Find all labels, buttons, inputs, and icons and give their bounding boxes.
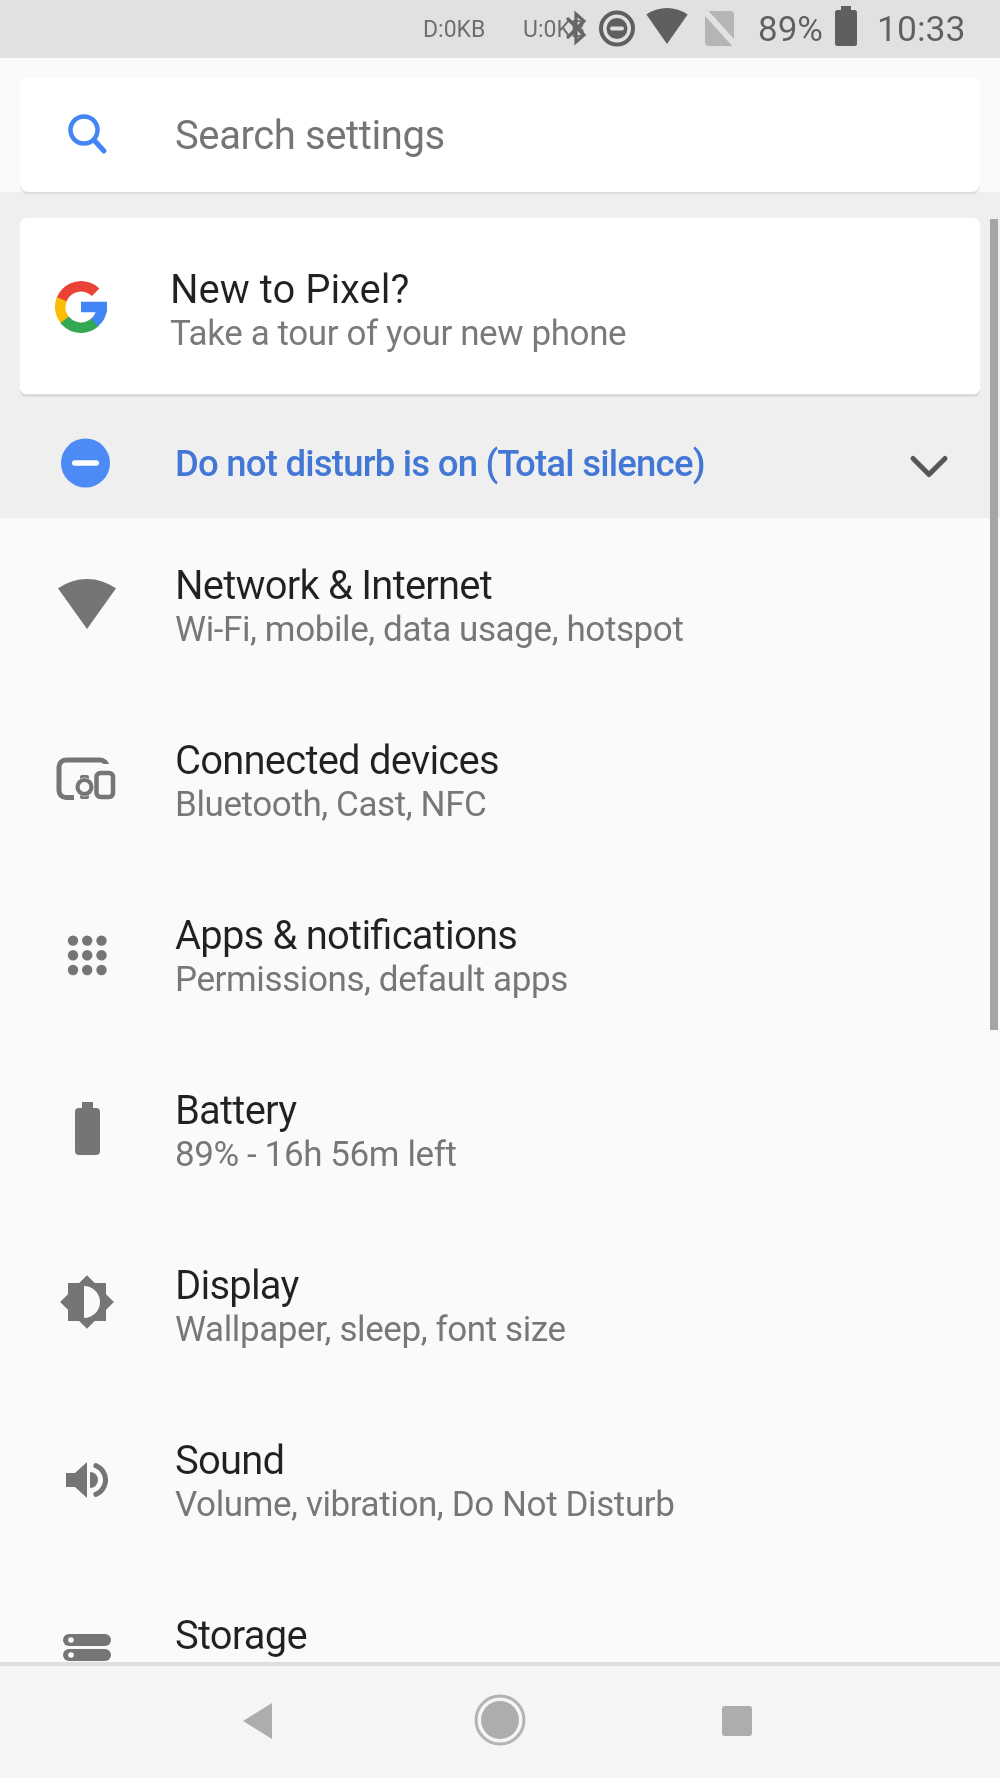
button[interactable] <box>467 1687 533 1753</box>
button[interactable]: New to Pixel? <box>20 218 980 394</box>
staticText: D:0KB <box>423 16 486 43</box>
staticText: Do not disturb is on (Total silence) <box>175 442 705 485</box>
staticText: Permissions, default apps <box>175 959 568 1000</box>
staticText: Search settings <box>175 112 445 159</box>
button[interactable]: Search settings <box>20 78 980 192</box>
staticText: Display <box>175 1262 299 1309</box>
staticText: Wallpaper, sleep, font size <box>175 1309 566 1350</box>
staticText: Connected devices <box>175 737 499 784</box>
button[interactable]: Connected devices <box>0 693 1000 868</box>
button[interactable]: Do not disturb is on (Total silence) <box>0 394 1000 518</box>
staticText: 10:33 <box>877 8 966 50</box>
button[interactable]: Battery <box>0 1043 1000 1218</box>
button[interactable]: Display <box>0 1218 1000 1393</box>
staticText: Take a tour of your new phone <box>170 313 627 354</box>
staticText: New to Pixel? <box>170 266 410 313</box>
staticText: 52% used - 15.28 GB free <box>175 1659 554 1700</box>
staticText: 89% <box>758 9 823 50</box>
button[interactable] <box>228 1688 294 1754</box>
button[interactable]: Sound <box>0 1393 1000 1568</box>
button[interactable]: Storage <box>0 1568 1000 1743</box>
staticText: Network & Internet <box>175 562 493 609</box>
staticText: Battery <box>175 1087 297 1134</box>
button[interactable] <box>704 1688 770 1754</box>
staticText: Bluetooth, Cast, NFC <box>175 784 487 825</box>
button[interactable]: Apps & notifications <box>0 868 1000 1043</box>
staticText: U:0KB <box>523 16 586 43</box>
staticText: Storage <box>175 1612 307 1659</box>
staticText: Volume, vibration, Do Not Disturb <box>175 1484 675 1525</box>
staticText: 89% - 16h 56m left <box>175 1134 457 1175</box>
staticText: Apps & notifications <box>175 912 518 959</box>
staticText: Wi-Fi, mobile, data usage, hotspot <box>175 609 684 650</box>
staticText: Sound <box>175 1437 285 1484</box>
button[interactable]: Network & Internet <box>0 518 1000 693</box>
